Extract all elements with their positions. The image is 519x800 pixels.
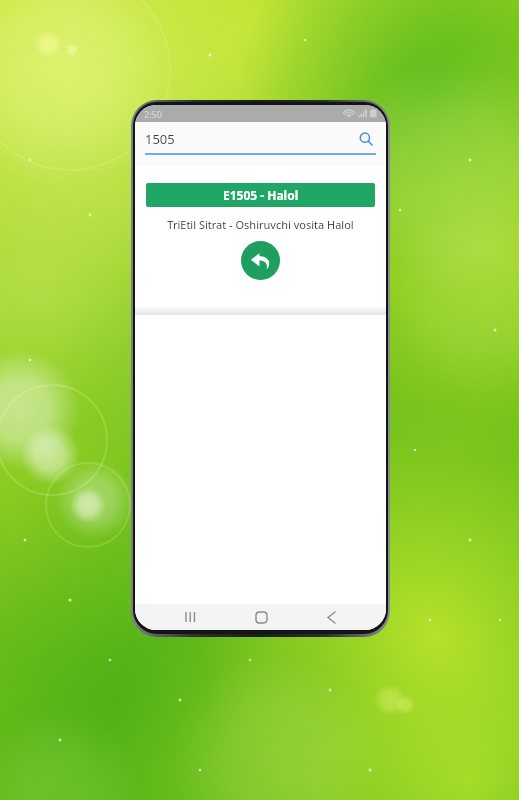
button[interactable]: 1505 — [145, 129, 376, 149]
button[interactable]: Back — [241, 241, 280, 280]
button[interactable]: Home — [246, 604, 276, 630]
button[interactable]: E1505 - Halol — [146, 183, 375, 207]
button[interactable]: Back — [316, 604, 346, 630]
staticText: E1505 - Halol — [223, 187, 299, 203]
staticText: TriEtil Sitrat - Oshiruvchi vosita Halol — [146, 217, 375, 232]
staticText: 2:50 — [144, 108, 162, 120]
button[interactable]: Recent apps — [175, 604, 205, 630]
staticText: 1505 — [145, 130, 356, 148]
button[interactable]: Search — [356, 129, 376, 149]
